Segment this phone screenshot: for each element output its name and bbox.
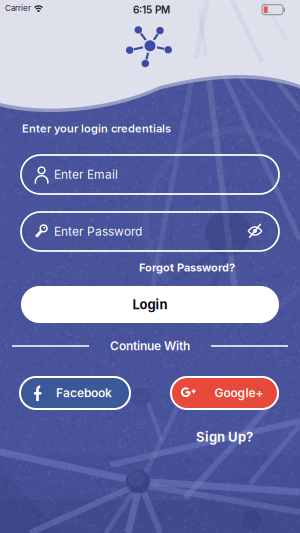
button[interactable]: Facebook xyxy=(20,377,130,409)
button[interactable]: Forgot Password? xyxy=(139,261,235,274)
staticText: Enter Password xyxy=(54,224,142,239)
button[interactable]: Show Password xyxy=(242,218,268,244)
staticText: Sign Up? xyxy=(196,429,253,445)
staticText: Google+ xyxy=(214,386,263,400)
button[interactable]: Sign Up? xyxy=(196,429,253,445)
staticText: Enter your login credentials xyxy=(22,122,171,135)
staticText: Enter Email xyxy=(54,167,118,182)
button[interactable]: Google+ xyxy=(171,377,278,409)
staticText: Login xyxy=(132,297,167,312)
button[interactable]: Login xyxy=(21,286,279,323)
staticText: Continue With xyxy=(110,339,190,353)
staticText: Forgot Password? xyxy=(139,261,235,274)
staticText: 6:15 PM xyxy=(133,4,170,16)
staticText: Carrier xyxy=(5,3,31,13)
staticText: Facebook xyxy=(56,386,112,400)
